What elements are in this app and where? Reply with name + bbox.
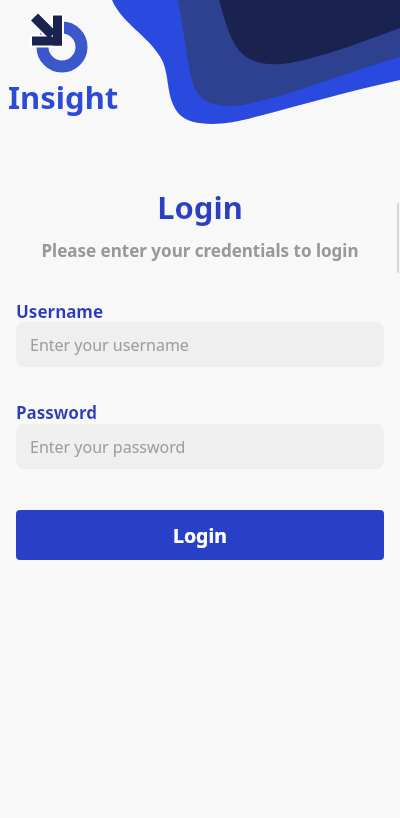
staticText: Enter your password — [30, 436, 186, 458]
staticText: Password — [16, 401, 97, 424]
staticText: Username — [16, 300, 104, 323]
staticText: Insight — [8, 76, 119, 118]
staticText: Login — [0, 186, 400, 228]
button[interactable]: Enter your password — [16, 424, 384, 469]
staticText: Login — [173, 522, 227, 549]
button[interactable]: Enter your username — [16, 322, 384, 367]
staticText: Please enter your credentials to login — [0, 239, 400, 262]
staticText: Enter your username — [30, 334, 189, 356]
button[interactable]: Login — [16, 510, 384, 560]
